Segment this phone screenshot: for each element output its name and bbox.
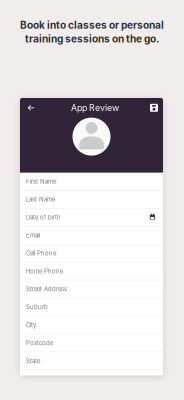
button[interactable]: First Name (20, 173, 163, 190)
button[interactable]: Last Name (20, 191, 163, 208)
button[interactable]: Email (20, 227, 163, 244)
staticText: Street Address (26, 285, 67, 293)
button[interactable]: Back (23, 101, 39, 115)
staticText: Cell Phone (26, 250, 56, 257)
staticText: Home Phone (26, 268, 63, 275)
button[interactable]: Suburb (20, 298, 163, 316)
button[interactable]: City (20, 316, 163, 334)
staticText: First Name (26, 178, 56, 185)
staticText: State (26, 357, 40, 365)
button[interactable]: Street Address (20, 280, 163, 298)
staticText: Email (26, 232, 40, 239)
staticText: Postcode (26, 339, 53, 347)
staticText: Date of birth (26, 214, 61, 221)
staticText: training sessions on the go. (25, 33, 159, 45)
button[interactable]: Date of birth (20, 209, 163, 226)
staticText: Book into classes or personal (20, 19, 164, 31)
staticText: City (26, 321, 36, 329)
staticText: Last Name (26, 196, 55, 203)
staticText: Suburb (26, 303, 48, 311)
staticText: App Review (71, 102, 119, 113)
button[interactable]: Home Phone (20, 263, 163, 280)
button[interactable]: Save (146, 101, 162, 115)
button[interactable]: Postcode (20, 334, 163, 352)
button[interactable]: State (20, 352, 163, 370)
button[interactable]: Cell Phone (20, 245, 163, 262)
